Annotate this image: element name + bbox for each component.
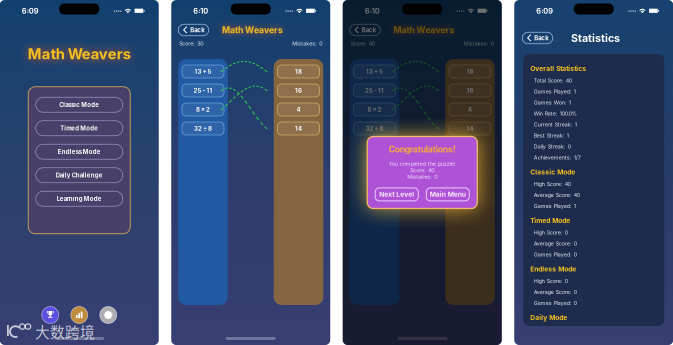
staticText: Back bbox=[534, 34, 548, 42]
button[interactable]: Learning Mode bbox=[36, 191, 123, 206]
staticText: Score: 40 bbox=[410, 167, 434, 173]
staticText: Best Streak: 1 bbox=[534, 132, 569, 139]
button[interactable]: Daily Challenge bbox=[36, 168, 123, 183]
staticText: 18 bbox=[466, 68, 473, 75]
staticText: Games Won: 1 bbox=[534, 99, 571, 106]
staticText: Statistics bbox=[571, 31, 620, 44]
staticText: Next Level bbox=[379, 190, 414, 198]
staticText: 6:10 bbox=[365, 7, 380, 15]
staticText: 6:09 bbox=[22, 7, 39, 15]
button[interactable]: 8 × 2 bbox=[182, 103, 224, 116]
button[interactable]: 16 bbox=[449, 84, 491, 97]
staticText: Timed Mode bbox=[60, 125, 98, 132]
staticText: Total Score: 40 bbox=[534, 77, 572, 84]
staticText: 25 - 11 bbox=[365, 87, 384, 94]
staticText: Average Score: 0 bbox=[534, 289, 577, 295]
staticText: Average Score: 0 bbox=[534, 240, 577, 247]
staticText: Endless Mode bbox=[58, 148, 101, 155]
staticText: Win Rate: 100.0% bbox=[534, 110, 577, 117]
staticText: 13 + 5 bbox=[194, 68, 211, 75]
staticText: 4 bbox=[296, 106, 300, 113]
staticText: 8 × 2 bbox=[196, 106, 210, 113]
button[interactable]: 8 × 2 bbox=[353, 103, 395, 116]
staticText: Learning Mode bbox=[57, 195, 102, 202]
staticText: 32 ÷ 8 bbox=[365, 125, 383, 132]
staticText: High Score: 40 bbox=[534, 181, 571, 187]
staticText: Games Played: 1 bbox=[534, 88, 576, 95]
staticText: Timed Mode bbox=[530, 216, 570, 225]
staticText: 4 bbox=[468, 106, 472, 113]
button[interactable]: Timed Mode bbox=[36, 121, 123, 136]
staticText: You completed the puzzle! bbox=[389, 161, 456, 167]
button[interactable]: 32 ÷ 8 bbox=[182, 122, 224, 135]
staticText: 18 bbox=[295, 68, 302, 75]
staticText: 16 bbox=[295, 87, 302, 94]
staticText: High Score: 0 bbox=[534, 229, 568, 236]
staticText: Math Weavers bbox=[393, 25, 454, 35]
button[interactable]: Endless Mode bbox=[36, 144, 123, 159]
button[interactable]: 16 bbox=[277, 84, 319, 97]
button[interactable]: Back bbox=[522, 32, 553, 44]
button[interactable]: 4 bbox=[277, 103, 319, 116]
staticText: Back bbox=[362, 26, 376, 34]
staticText: 6:09 bbox=[536, 7, 553, 15]
button[interactable]: Next Level bbox=[375, 188, 418, 201]
staticText: Games Played: 1 bbox=[534, 203, 576, 209]
button[interactable]: Back bbox=[178, 24, 209, 36]
staticText: Daily Streak: 0 bbox=[534, 143, 571, 150]
staticText: Congratulations! bbox=[389, 144, 456, 155]
staticText: Daily Mode bbox=[530, 313, 567, 322]
staticText: Achievements: 1/7 bbox=[534, 154, 581, 161]
staticText: Math Weavers bbox=[222, 25, 283, 35]
staticText: Games Played: 0 bbox=[534, 251, 577, 258]
button[interactable]: Statistics bbox=[70, 306, 88, 324]
button[interactable]: 18 bbox=[449, 65, 491, 78]
staticText: Mistakes: 0 bbox=[407, 173, 437, 180]
staticText: 6:10 bbox=[193, 7, 208, 15]
staticText: Mistakes: 0 bbox=[464, 40, 494, 47]
staticText: 16 bbox=[466, 87, 473, 94]
staticText: 32 ÷ 8 bbox=[194, 125, 212, 132]
button[interactable]: Main Menu bbox=[426, 188, 469, 201]
staticText: 8 × 2 bbox=[367, 106, 381, 113]
staticText: Current Streak: 1 bbox=[534, 121, 577, 128]
button[interactable]: Classic Mode bbox=[36, 97, 123, 112]
staticText: Classic Mode bbox=[59, 101, 99, 108]
button[interactable]: 4 bbox=[449, 103, 491, 116]
button[interactable]: 13 + 5 bbox=[182, 65, 224, 78]
staticText: Endless Mode bbox=[530, 265, 576, 273]
staticText: 14 bbox=[466, 125, 473, 132]
staticText: 14 bbox=[295, 125, 302, 132]
button[interactable]: 13 + 5 bbox=[353, 65, 395, 78]
button[interactable]: 32 ÷ 8 bbox=[353, 122, 395, 135]
staticText: Daily Challenge bbox=[56, 172, 103, 179]
staticText: Mistakes: 0 bbox=[292, 40, 322, 47]
button[interactable]: 25 - 11 bbox=[353, 84, 395, 97]
staticText: Games Played: 0 bbox=[534, 300, 577, 306]
staticText: Score: 30 bbox=[179, 40, 203, 47]
button[interactable]: 25 - 11 bbox=[182, 84, 224, 97]
staticText: 大数跨境 bbox=[35, 321, 95, 342]
staticText: Overall Statistics bbox=[530, 64, 586, 73]
button[interactable]: 14 bbox=[277, 122, 319, 135]
staticText: Average Score: 40 bbox=[534, 192, 580, 198]
staticText: 13 + 5 bbox=[366, 68, 383, 75]
button[interactable]: Achievements bbox=[41, 306, 59, 324]
button[interactable]: 18 bbox=[277, 65, 319, 78]
staticText: Main Menu bbox=[430, 190, 466, 198]
staticText: 25 - 11 bbox=[193, 87, 212, 94]
staticText: Back bbox=[190, 26, 204, 34]
button[interactable]: Back bbox=[350, 24, 380, 36]
staticText: Math Weavers bbox=[28, 45, 131, 63]
staticText: Classic Mode bbox=[530, 168, 575, 176]
button[interactable]: 14 bbox=[449, 122, 491, 135]
button[interactable]: Settings bbox=[99, 306, 117, 324]
staticText: Score: 40 bbox=[351, 40, 375, 47]
staticText: High Score: 0 bbox=[534, 278, 568, 284]
